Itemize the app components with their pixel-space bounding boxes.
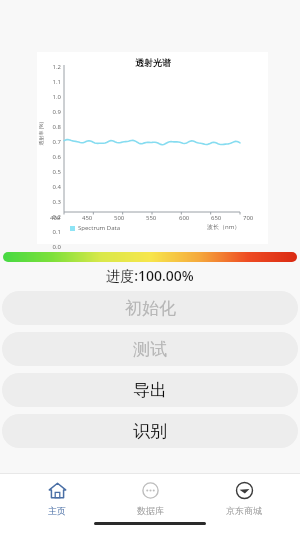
staticText: 京东商城 [226,505,262,516]
button[interactable]: 测试 [2,332,298,366]
staticText: 0.4 [45,183,61,191]
staticText: 0.0 [45,243,61,251]
staticText: 1.1 [45,78,61,86]
button[interactable]: 识别 [2,414,298,448]
staticText: 450 [82,214,93,222]
staticText: 初始化 [125,298,176,319]
staticText: 0.5 [45,168,61,176]
staticText: 0.1 [45,228,61,236]
button[interactable]: 主页 [20,481,94,516]
staticText: 0.9 [45,108,61,116]
staticText: 导出 [133,380,167,401]
button[interactable]: 导出 [2,373,298,407]
button[interactable]: 初始化 [2,291,298,325]
staticText: 0.8 [45,123,61,131]
staticText: 1.0 [45,93,61,101]
staticText: 0.6 [45,153,61,161]
staticText: 透射率 (%) [37,121,44,145]
button[interactable]: 京东商城 [207,481,281,516]
staticText: 主页 [48,505,66,516]
staticText: 650 [211,214,222,222]
staticText: 550 [146,214,157,222]
staticText: 数据库 [137,505,164,516]
button[interactable]: 数据库 [113,481,187,516]
staticText: 500 [114,214,125,222]
staticText: 0.7 [45,138,61,146]
staticText: 1.2 [45,63,61,71]
staticText: 透射光谱 [135,57,171,68]
staticText: 识别 [133,421,167,442]
staticText: 600 [179,214,190,222]
staticText: 波长（nm） [207,223,241,231]
staticText: 0.2 [45,213,61,221]
staticText: 700 [243,214,254,222]
staticText: 测试 [133,339,167,360]
staticText: Spectrum Data [78,224,121,232]
staticText: 0.3 [45,198,61,206]
staticText: 400 [50,214,61,222]
staticText: 进度:100.00% [0,266,300,285]
